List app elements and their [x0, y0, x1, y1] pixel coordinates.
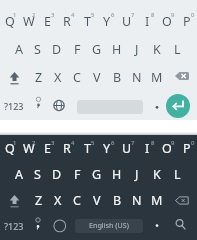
staticText: English (US): [89, 220, 129, 230]
staticText: S: [34, 166, 41, 183]
button[interactable]: G: [87, 161, 107, 187]
button[interactable]: ?123: [0, 91, 28, 119]
button[interactable]: [167, 63, 197, 91]
button[interactable]: N: [127, 187, 147, 213]
button[interactable]: P: [177, 7, 197, 35]
staticText: A: [15, 166, 23, 183]
staticText: P: [183, 140, 191, 157]
button[interactable]: W: [19, 135, 38, 161]
button[interactable]: [49, 91, 69, 119]
button[interactable]: G: [87, 35, 107, 63]
button[interactable]: [0, 187, 29, 213]
button[interactable]: [147, 213, 167, 239]
staticText: K: [153, 166, 161, 183]
staticText: 0: [191, 139, 195, 147]
button[interactable]: C: [67, 187, 87, 213]
button[interactable]: [167, 187, 197, 213]
staticText: 5: [91, 11, 95, 19]
button[interactable]: T: [77, 7, 97, 35]
staticText: F: [74, 166, 81, 183]
button[interactable]: R: [57, 135, 77, 161]
staticText: 1: [13, 11, 17, 19]
button[interactable]: V: [87, 187, 107, 213]
button[interactable]: Q: [0, 135, 19, 161]
button[interactable]: I: [137, 7, 157, 35]
button[interactable]: [28, 213, 49, 239]
button[interactable]: X: [48, 187, 67, 213]
button[interactable]: F: [67, 35, 87, 63]
button[interactable]: [168, 213, 192, 239]
staticText: T: [84, 13, 91, 30]
staticText: N: [132, 192, 142, 209]
button[interactable]: R: [57, 7, 77, 35]
button[interactable]: [166, 94, 190, 118]
staticText: M: [151, 69, 163, 86]
button[interactable]: T: [77, 135, 97, 161]
button[interactable]: M: [147, 63, 167, 91]
button[interactable]: B: [107, 63, 127, 91]
button[interactable]: [49, 213, 70, 239]
staticText: 4: [71, 139, 75, 147]
staticText: ?123: [4, 100, 24, 112]
button[interactable]: [28, 91, 49, 119]
button[interactable]: I: [137, 135, 157, 161]
button[interactable]: [0, 63, 29, 91]
staticText: Q: [5, 13, 15, 30]
staticText: 0: [191, 11, 195, 19]
button[interactable]: Z: [29, 63, 48, 91]
button[interactable]: D: [47, 161, 67, 187]
button[interactable]: L: [167, 161, 187, 187]
button[interactable]: B: [107, 187, 127, 213]
staticText: 7: [131, 139, 135, 147]
staticText: D: [52, 41, 62, 58]
button[interactable]: Z: [29, 187, 48, 213]
staticText: E: [44, 140, 51, 157]
staticText: R: [63, 13, 71, 30]
button[interactable]: J: [127, 161, 147, 187]
staticText: U: [122, 13, 132, 30]
button[interactable]: ?123: [0, 213, 28, 239]
button[interactable]: Y: [97, 7, 117, 35]
button[interactable]: W: [19, 7, 38, 35]
button[interactable]: F: [67, 161, 87, 187]
button[interactable]: Y: [97, 135, 117, 161]
staticText: E: [44, 13, 51, 30]
button[interactable]: E: [38, 135, 57, 161]
staticText: H: [112, 41, 122, 58]
button[interactable]: P: [177, 135, 197, 161]
button[interactable]: H: [107, 35, 127, 63]
button[interactable]: D: [47, 35, 67, 63]
button[interactable]: U: [117, 7, 137, 35]
button[interactable]: S: [28, 35, 47, 63]
button[interactable]: V: [87, 63, 107, 91]
button[interactable]: A: [9, 35, 28, 63]
button[interactable]: C: [67, 63, 87, 91]
button[interactable]: K: [147, 161, 167, 187]
button[interactable]: N: [127, 63, 147, 91]
button[interactable]: U: [117, 135, 137, 161]
staticText: A: [15, 41, 23, 58]
button[interactable]: L: [167, 35, 187, 63]
staticText: J: [135, 166, 139, 183]
button[interactable]: A: [9, 161, 28, 187]
button[interactable]: O: [157, 135, 177, 161]
button[interactable]: H: [107, 161, 127, 187]
button[interactable]: S: [28, 161, 47, 187]
staticText: V: [93, 69, 101, 86]
staticText: W: [23, 13, 35, 30]
button[interactable]: X: [48, 63, 67, 91]
staticText: 3: [51, 11, 55, 19]
staticText: B: [113, 192, 122, 209]
staticText: B: [113, 69, 122, 86]
staticText: S: [34, 41, 41, 58]
button[interactable]: [147, 91, 167, 119]
button[interactable]: English (US): [75, 219, 143, 233]
button[interactable]: O: [157, 7, 177, 35]
button[interactable]: E: [38, 7, 57, 35]
button[interactable]: Q: [0, 7, 19, 35]
staticText: W: [23, 140, 35, 157]
button[interactable]: J: [127, 35, 147, 63]
button[interactable]: M: [147, 187, 167, 213]
button[interactable]: K: [147, 35, 167, 63]
